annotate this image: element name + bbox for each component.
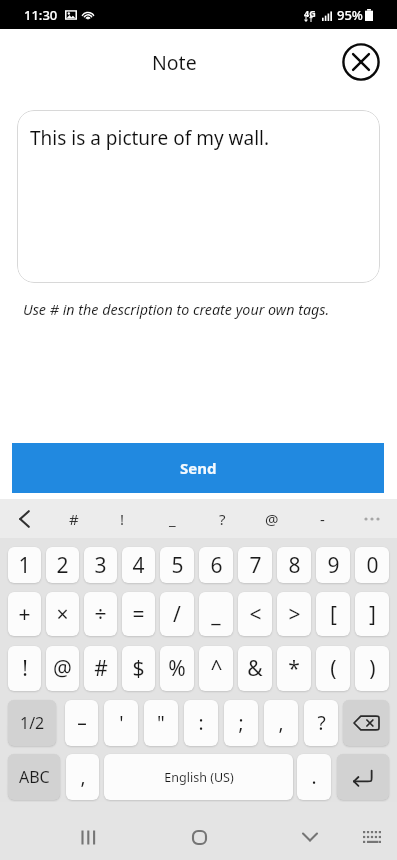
button[interactable]: * (277, 646, 311, 691)
staticText: ! (22, 654, 28, 683)
button[interactable]: Recent apps (66, 815, 110, 859)
button[interactable]: < (238, 592, 272, 636)
button[interactable]: _ (199, 592, 233, 636)
button[interactable]: # (49, 499, 98, 538)
staticText: . (311, 764, 317, 790)
button[interactable]: / (160, 592, 194, 636)
staticText: 0 (366, 551, 379, 580)
staticText: ; (238, 710, 244, 736)
staticText: – (77, 710, 87, 736)
staticText: + (18, 600, 31, 629)
button[interactable]: @ (247, 499, 297, 538)
button[interactable]: ' (104, 700, 138, 746)
staticText: ? (317, 710, 326, 736)
button[interactable]: 5 (160, 547, 194, 583)
staticText: < (249, 600, 262, 629)
button[interactable]: ) (355, 646, 389, 691)
staticText: 2 (56, 551, 69, 580)
button[interactable]: # (84, 646, 117, 691)
button[interactable]: ; (224, 700, 258, 746)
button[interactable]: = (122, 592, 155, 636)
button[interactable]: ? (304, 700, 338, 746)
staticText: [ (330, 600, 337, 629)
staticText: 1 (18, 551, 31, 580)
button[interactable]: 6 (199, 547, 233, 583)
button[interactable]: More options (347, 499, 397, 538)
staticText: # (94, 654, 108, 683)
button[interactable]: This is a picture of my wall. (17, 110, 380, 283)
staticText: _ (211, 600, 221, 629)
button[interactable]: Backspace (343, 700, 389, 746)
button[interactable]: 0 (355, 547, 389, 583)
button[interactable]: , (66, 754, 99, 800)
staticText: ( (330, 654, 337, 683)
button[interactable]: Enter (337, 754, 389, 800)
button[interactable]: English (US) (104, 754, 293, 800)
button[interactable]: 8 (277, 547, 311, 583)
button[interactable]: 1 (8, 547, 41, 583)
button[interactable]: & (238, 646, 272, 691)
button[interactable]: Change keyboard (350, 815, 394, 859)
staticText: 4 (132, 551, 145, 580)
staticText: English (US) (164, 769, 234, 786)
button[interactable]: Previous suggestions (0, 499, 49, 538)
staticText: : (198, 710, 204, 736)
button[interactable]: _ (147, 499, 197, 538)
button[interactable]: ! (8, 646, 41, 691)
button[interactable]: : (184, 700, 218, 746)
button[interactable]: + (8, 592, 41, 636)
button[interactable]: ABC (8, 754, 60, 800)
staticText: 6 (210, 551, 223, 580)
button[interactable]: – (65, 700, 98, 746)
staticText: - (320, 509, 325, 529)
button[interactable]: ÷ (84, 592, 117, 636)
staticText: $ (132, 654, 145, 683)
button[interactable]: 9 (316, 547, 350, 583)
staticText: = (132, 600, 145, 629)
staticText: ? (219, 509, 226, 529)
staticText: 9 (327, 551, 340, 580)
staticText: _ (169, 509, 176, 529)
button[interactable]: Send (12, 443, 384, 493)
staticText: # (69, 509, 79, 529)
button[interactable]: Home (177, 815, 221, 859)
staticText: Send (180, 458, 217, 478)
button[interactable]: - (297, 499, 347, 538)
button[interactable]: 7 (238, 547, 272, 583)
button[interactable]: Hide keyboard (288, 815, 332, 859)
button[interactable]: , (264, 700, 298, 746)
button[interactable]: ^ (199, 646, 233, 691)
button[interactable]: " (144, 700, 178, 746)
button[interactable]: @ (46, 646, 79, 691)
button[interactable]: 3 (84, 547, 117, 583)
staticText: 4G (304, 7, 316, 19)
staticText: 7 (249, 551, 262, 580)
button[interactable]: $ (122, 646, 155, 691)
staticText: ] (369, 600, 376, 629)
button[interactable]: % (160, 646, 194, 691)
button[interactable]: Close (338, 39, 383, 84)
button[interactable]: 2 (46, 547, 79, 583)
staticText: / (173, 600, 181, 629)
staticText: ) (369, 654, 376, 683)
button[interactable]: . (297, 754, 331, 800)
staticText: ! (120, 509, 125, 529)
staticText: ^ (210, 654, 223, 683)
button[interactable]: ( (316, 646, 350, 691)
staticText: 3 (94, 551, 107, 580)
staticText: > (288, 600, 301, 629)
button[interactable]: × (46, 592, 79, 636)
button[interactable]: > (277, 592, 311, 636)
staticText: , (278, 710, 284, 736)
staticText: * (288, 654, 300, 683)
staticText: 5 (171, 551, 184, 580)
button[interactable]: ! (98, 499, 147, 538)
button[interactable]: 4 (122, 547, 155, 583)
button[interactable]: 1/2 (8, 700, 56, 746)
button[interactable]: ] (355, 592, 389, 636)
staticText: Note (152, 49, 197, 76)
staticText: % (168, 654, 186, 683)
button[interactable]: ? (197, 499, 247, 538)
staticText: 1/2 (20, 712, 45, 734)
button[interactable]: [ (316, 592, 350, 636)
